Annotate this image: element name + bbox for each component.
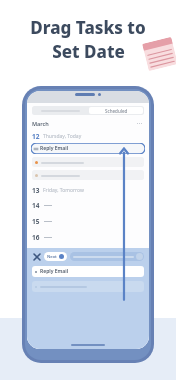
staticText: Thursday, Today (43, 133, 82, 140)
button[interactable]: Reply Email (32, 266, 144, 277)
button[interactable]: 15 (32, 217, 144, 226)
button[interactable]: Close (32, 252, 41, 261)
button[interactable] (70, 252, 144, 261)
staticText: Set Date (52, 40, 125, 63)
button[interactable] (32, 281, 144, 292)
button[interactable]: More options (135, 121, 144, 126)
staticText: 12 (32, 132, 40, 141)
staticText: Drag Tasks to (30, 16, 146, 39)
staticText: Next (47, 254, 57, 260)
staticText: Scheduled (105, 108, 128, 114)
staticText: March (32, 120, 49, 127)
staticText: Friday, Tomorrow (43, 187, 84, 194)
button[interactable]: 14 (32, 201, 144, 210)
button[interactable] (32, 157, 144, 167)
staticText: 14 (32, 201, 40, 210)
staticText: 13 (32, 186, 40, 195)
staticText: Reply Email (40, 268, 69, 275)
button[interactable]: Reply Email (31, 143, 145, 154)
button[interactable]: 16 (32, 233, 144, 242)
button[interactable]: 13 (32, 186, 144, 195)
button[interactable] (32, 170, 144, 180)
staticText: 15 (32, 217, 40, 226)
button[interactable]: Scheduled (89, 107, 143, 114)
button[interactable] (32, 106, 88, 115)
button[interactable]: Next (44, 252, 67, 261)
staticText: 16 (32, 233, 40, 242)
button[interactable]: 12 (32, 132, 144, 141)
staticText: Reply Email (40, 145, 69, 152)
